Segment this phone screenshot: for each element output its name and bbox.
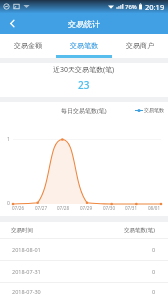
staticText: 08/01 — [148, 205, 160, 211]
staticText: 每日交易笔数(笔) — [61, 107, 107, 115]
staticText: 0 — [7, 200, 10, 207]
staticText: 23 — [78, 78, 90, 92]
button[interactable]: 2018-08-01 — [0, 239, 168, 260]
staticText: 07/26 — [12, 205, 24, 211]
staticText: 76% — [125, 3, 137, 11]
staticText: 20:19 — [145, 2, 165, 12]
staticText: 交易金额 — [14, 41, 42, 50]
staticText: 07/28 — [57, 205, 69, 211]
staticText: 2018-07-31 — [12, 268, 41, 275]
staticText: 交易笔数 — [144, 107, 164, 113]
staticText: 近30天交易笔数(笔) — [53, 65, 115, 75]
staticText: 0 — [152, 246, 156, 253]
staticText: 交易笔数 — [70, 41, 98, 50]
staticText: 交易统计 — [68, 19, 100, 29]
button[interactable]: 交易金额 — [0, 34, 56, 58]
button[interactable]: 2018-07-31 — [0, 261, 168, 282]
button[interactable]: 交易商户 — [112, 34, 168, 58]
staticText: 交易时间 — [11, 227, 33, 234]
staticText: 0 — [152, 268, 156, 275]
button[interactable]: 交易笔数 — [56, 34, 112, 58]
staticText: 07/31 — [125, 205, 137, 211]
staticText: 交易笔数(笔) — [124, 226, 155, 234]
staticText: 2018-08-01 — [12, 246, 41, 253]
staticText: 1 — [7, 136, 10, 143]
staticText: 07/30 — [103, 205, 115, 211]
staticText: 07/27 — [35, 205, 47, 211]
staticText: 交易商户 — [126, 41, 154, 50]
button[interactable]: 2018-07-30 — [0, 283, 168, 300]
staticText: 2018-07-30 — [12, 288, 41, 295]
staticText: 0 — [152, 288, 156, 295]
button[interactable]: Back — [0, 13, 24, 34]
staticText: 07/29 — [80, 205, 92, 211]
